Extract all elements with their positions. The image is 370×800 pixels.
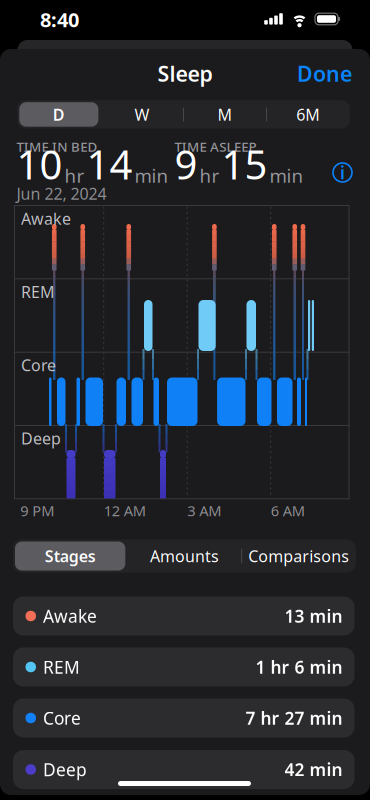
button[interactable]: Awake [13,596,354,635]
button[interactable]: Comparisons [242,539,356,572]
button[interactable]: W [100,100,183,129]
button[interactable]: Done [292,58,352,88]
staticText: 7 hr 27 min [245,706,342,729]
staticText: 9 [174,137,197,190]
staticText: 14 [86,137,132,190]
staticText: REM [43,655,80,678]
staticText: min [269,163,303,188]
staticText: 42 min [284,758,342,781]
staticText: TIME IN BED [16,138,97,155]
staticText: min [134,163,168,188]
staticText: 6M [296,104,320,125]
staticText: TIME ASLEEP [174,138,256,155]
staticText: 6 AM [271,501,305,520]
staticText: Core [21,354,56,376]
button[interactable]: M [183,100,267,129]
staticText: D [53,104,65,125]
staticText: Done [297,59,352,88]
staticText: Stages [45,545,96,567]
staticText: 9 PM [20,501,54,520]
staticText: Awake [21,208,71,229]
button[interactable]: Stages [13,539,127,572]
button[interactable]: Amounts [127,539,242,572]
staticText: REM [21,281,55,302]
staticText: W [134,104,149,125]
staticText: 1 hr 6 min [255,655,342,678]
staticText: Sleep [157,59,212,88]
staticText: hr [64,163,84,188]
staticText: Awake [43,604,97,627]
button[interactable]: Deep [13,750,354,789]
staticText: Core [43,706,81,729]
staticText: Deep [21,428,61,449]
staticText: 3 AM [187,501,221,520]
button[interactable]: D [17,100,100,129]
staticText: 15 [221,137,267,190]
staticText: Amounts [150,545,219,567]
staticText: 13 min [284,604,342,627]
staticText: hr [199,163,219,188]
button[interactable]: Core [13,698,354,737]
button[interactable]: i [329,159,355,185]
staticText: 10 [16,137,62,190]
staticText: Jun 22, 2024 [16,183,106,204]
staticText: Deep [43,758,87,781]
staticText: Comparisons [248,545,349,567]
staticText: i [340,161,345,184]
staticText: 12 AM [104,501,146,520]
button[interactable]: REM [13,647,354,686]
staticText: M [218,104,233,125]
button[interactable]: 6M [267,100,350,129]
staticText: 8:40 [40,6,79,33]
